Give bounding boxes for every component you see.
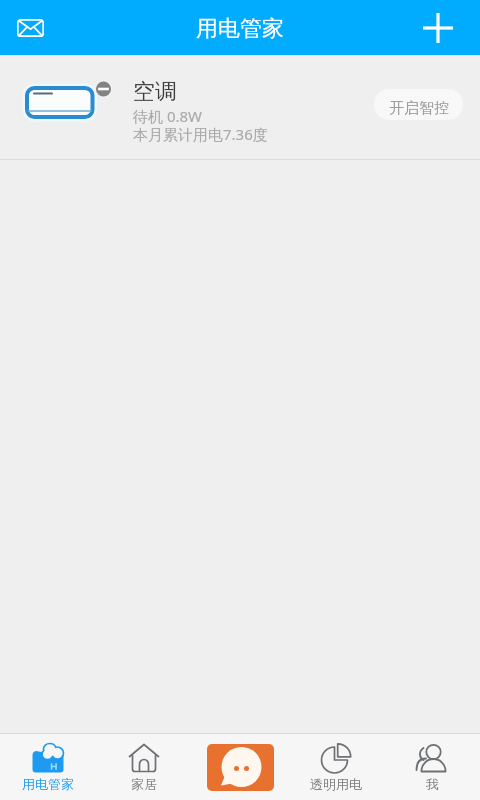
button[interactable]: 透明用电 xyxy=(288,734,384,800)
button[interactable]: Add device xyxy=(413,3,463,53)
button[interactable]: 家居 xyxy=(96,734,192,800)
button[interactable]: Chat assistant xyxy=(192,734,288,800)
staticText: 用电管家 xyxy=(22,776,74,792)
staticText: 本月累计用电7.36度 xyxy=(133,124,268,144)
button[interactable]: 开启智控 xyxy=(374,89,463,120)
button[interactable]: 我 xyxy=(384,734,480,800)
staticText: 空调 xyxy=(133,78,177,106)
staticText: 待机 0.8W xyxy=(133,106,203,126)
staticText: 用电管家 xyxy=(196,15,284,43)
staticText: 开启智控 xyxy=(389,99,449,118)
button[interactable]: Messages xyxy=(5,3,55,53)
button[interactable]: 用电管家 xyxy=(0,734,96,800)
staticText: 透明用电 xyxy=(310,776,362,792)
staticText: 家居 xyxy=(131,776,157,792)
staticText: 我 xyxy=(426,776,439,792)
button[interactable]: 空调 xyxy=(0,55,480,159)
